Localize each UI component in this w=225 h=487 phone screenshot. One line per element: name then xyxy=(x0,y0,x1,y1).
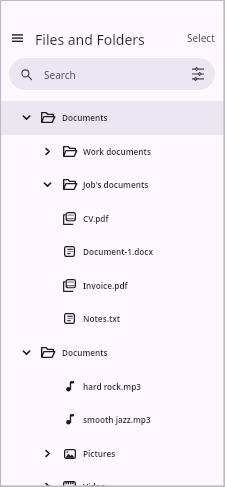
button[interactable]: Filters xyxy=(186,62,210,86)
staticText: Notes.txt xyxy=(83,313,121,324)
button[interactable]: smooth jazz.mp3 xyxy=(0,403,225,437)
button[interactable]: Documents xyxy=(0,101,225,135)
button[interactable]: Search xyxy=(9,58,215,90)
staticText: Pictures xyxy=(83,448,116,459)
button[interactable]: Job's documents xyxy=(0,168,225,202)
staticText: Document-1.docx xyxy=(83,246,154,257)
button[interactable]: Work documents xyxy=(0,135,225,169)
staticText: Work documents xyxy=(83,146,151,157)
staticText: Search xyxy=(44,68,76,82)
staticText: Job's documents xyxy=(83,179,149,190)
button[interactable]: CV.pdf xyxy=(0,202,225,236)
button[interactable]: Documents xyxy=(0,336,225,370)
staticText: Invoice.pdf xyxy=(83,280,128,291)
button[interactable]: Invoice.pdf xyxy=(0,269,225,303)
button[interactable]: Notes.txt xyxy=(0,302,225,336)
staticText: smooth jazz.mp3 xyxy=(83,414,151,425)
staticText: Files and Folders xyxy=(35,30,145,49)
staticText: hard rock.mp3 xyxy=(83,381,141,392)
staticText: Documents xyxy=(62,347,108,358)
button[interactable]: hard rock.mp3 xyxy=(0,370,225,404)
staticText: CV.pdf xyxy=(83,213,109,224)
staticText: Select xyxy=(187,31,215,45)
button[interactable]: Pictures xyxy=(0,437,225,471)
button[interactable]: Select xyxy=(181,26,221,50)
staticText: Video xyxy=(83,481,106,487)
button[interactable]: Menu xyxy=(6,27,28,49)
button[interactable]: Video xyxy=(0,470,225,487)
button[interactable]: Document-1.docx xyxy=(0,235,225,269)
staticText: Documents xyxy=(62,112,108,123)
